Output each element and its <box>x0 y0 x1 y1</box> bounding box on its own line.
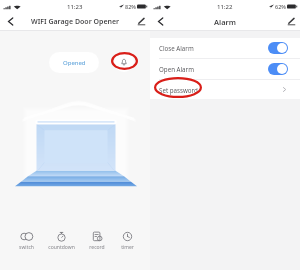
staticText: 11:22 <box>217 3 233 11</box>
button[interactable]: Open Alarm <box>150 59 300 79</box>
button[interactable]: Alarm <box>114 52 134 72</box>
button[interactable] <box>268 42 288 54</box>
staticText: record <box>89 244 105 251</box>
staticText: Alarm <box>214 17 237 27</box>
staticText: timer <box>121 244 134 251</box>
button[interactable]: Edit <box>133 13 150 30</box>
button[interactable]: Edit <box>283 13 300 30</box>
staticText: Set password <box>159 86 198 94</box>
staticText: countdown <box>48 244 75 251</box>
staticText: Open Alarm <box>159 65 194 73</box>
button[interactable]: countdown <box>44 229 78 253</box>
staticText: Opened <box>63 59 86 67</box>
staticText: switch <box>19 244 34 251</box>
button[interactable]: timer <box>110 229 144 253</box>
staticText: 11:23 <box>67 3 83 11</box>
button[interactable]: record <box>80 229 114 253</box>
staticText: 82% <box>125 3 136 10</box>
button[interactable]: Opened <box>49 52 99 73</box>
staticText: 62% <box>275 3 286 10</box>
staticText: Close Alarm <box>159 44 194 52</box>
button[interactable]: Back <box>0 13 18 30</box>
button[interactable]: switch <box>9 229 43 253</box>
button[interactable]: Close Alarm <box>150 38 300 58</box>
button[interactable]: Back <box>150 13 168 30</box>
button[interactable]: Set password <box>150 80 300 99</box>
button[interactable] <box>268 63 288 75</box>
staticText: WIFI Garage Door Opener <box>31 17 120 27</box>
